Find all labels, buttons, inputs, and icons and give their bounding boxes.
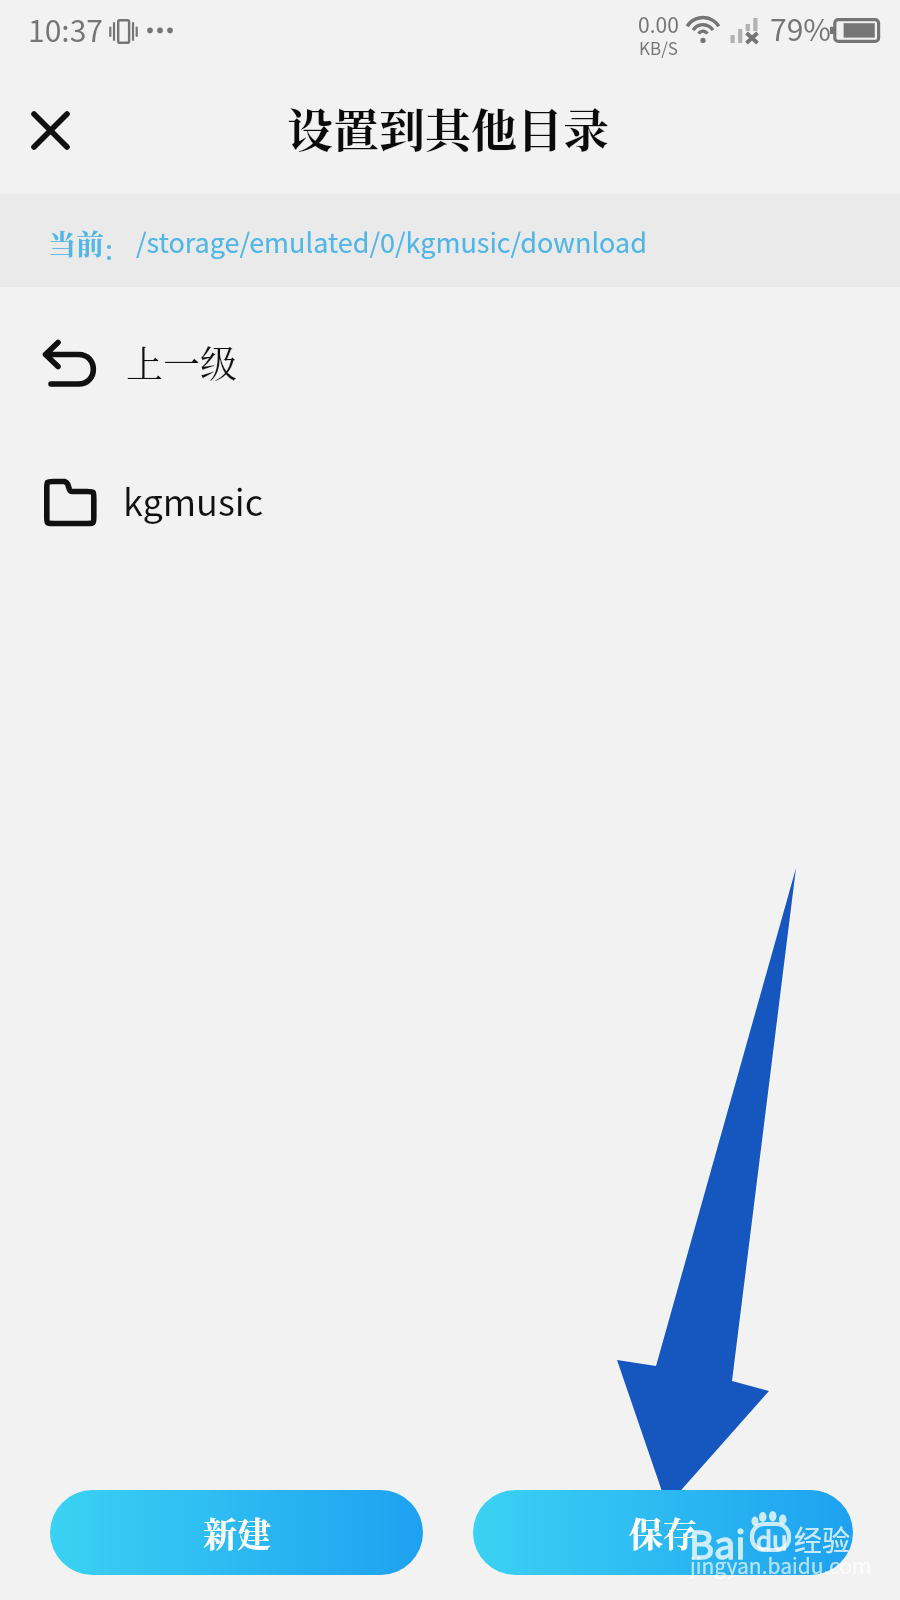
staticText: kgmusic [123, 474, 264, 526]
staticText: 设置到其他目录 [287, 94, 609, 160]
button[interactable]: 保存 [473, 1490, 853, 1575]
staticText: 0.00 [638, 9, 679, 39]
staticText: 新建 [203, 1508, 271, 1557]
button[interactable]: 新建 [50, 1490, 423, 1575]
staticText: 上一级 [126, 335, 237, 388]
staticText: 79% [770, 6, 831, 49]
staticText: /storage/emulated/0/kgmusic/download [136, 222, 647, 261]
staticText: KB/S [639, 35, 678, 60]
button[interactable]: 上一级 [0, 292, 900, 432]
staticText: du [756, 1520, 788, 1558]
button[interactable]: Close [12, 92, 88, 168]
staticText: 当前 [48, 223, 105, 263]
staticText: jingyan.baidu.com [690, 1550, 872, 1580]
staticText: Bai [689, 1515, 746, 1570]
staticText: 保存 [629, 1508, 697, 1557]
button[interactable]: kgmusic [0, 432, 900, 572]
staticText: 经验 [794, 1519, 851, 1560]
staticText: 10:37 [28, 7, 103, 50]
